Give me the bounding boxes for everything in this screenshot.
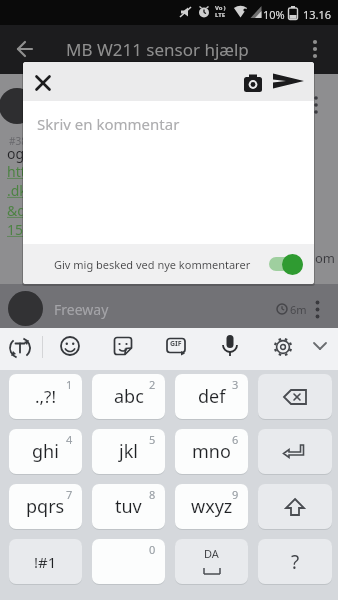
button[interactable] bbox=[15, 39, 35, 59]
button[interactable] bbox=[258, 484, 332, 529]
staticText: wxyz bbox=[191, 494, 233, 519]
button[interactable] bbox=[59, 335, 81, 357]
staticText: 4 bbox=[66, 432, 73, 447]
staticText: 2 bbox=[149, 377, 156, 392]
button[interactable] bbox=[308, 38, 324, 60]
staticText: 0 bbox=[149, 542, 156, 557]
button[interactable] bbox=[272, 73, 306, 91]
staticText: pqrs bbox=[26, 494, 65, 519]
button[interactable]: jkl bbox=[92, 429, 165, 474]
staticText: DA bbox=[204, 546, 219, 561]
staticText: jkl bbox=[119, 439, 138, 464]
button[interactable] bbox=[269, 252, 303, 276]
staticText: 5 bbox=[149, 432, 156, 447]
button[interactable] bbox=[221, 333, 239, 359]
staticText: og k bbox=[7, 144, 36, 163]
button[interactable] bbox=[243, 73, 265, 93]
staticText: 10% bbox=[263, 7, 285, 22]
staticText: 13.16 bbox=[303, 7, 332, 22]
staticText: tuv bbox=[115, 494, 142, 519]
staticText: 7 bbox=[66, 487, 73, 502]
staticText: Vo ) bbox=[215, 4, 226, 12]
staticText: mno bbox=[192, 439, 231, 464]
button[interactable]: mno bbox=[175, 429, 248, 474]
staticText: Freeway bbox=[54, 300, 109, 319]
button[interactable] bbox=[312, 340, 328, 352]
button[interactable]: def bbox=[175, 374, 248, 419]
button[interactable] bbox=[7, 335, 33, 361]
staticText: MB W211 sensor hjælp bbox=[66, 38, 249, 61]
staticText: 6 bbox=[232, 432, 239, 447]
staticText: om bbox=[315, 249, 336, 267]
button[interactable]: ? bbox=[258, 539, 332, 584]
button[interactable] bbox=[258, 374, 332, 419]
staticText: 6m bbox=[290, 302, 307, 317]
staticText: ? bbox=[291, 549, 300, 575]
staticText: 3 bbox=[232, 377, 239, 392]
button[interactable] bbox=[258, 429, 332, 474]
staticText: GIF bbox=[170, 339, 182, 349]
button[interactable] bbox=[272, 336, 294, 358]
staticText: Skriv en kommentar bbox=[37, 114, 180, 134]
staticText: !#1 bbox=[34, 552, 57, 572]
button[interactable]: 0 bbox=[92, 539, 165, 584]
button[interactable] bbox=[34, 74, 52, 92]
staticText: Giv mig besked ved nye kommentarer bbox=[54, 257, 251, 272]
staticText: abc bbox=[114, 384, 144, 409]
button[interactable]: !#1 bbox=[9, 539, 82, 584]
button[interactable] bbox=[165, 336, 187, 356]
staticText: .,?! bbox=[35, 385, 57, 408]
staticText: LTE bbox=[215, 11, 226, 19]
staticText: https bbox=[7, 162, 42, 181]
staticText: def bbox=[198, 384, 226, 409]
staticText: &ds bbox=[7, 201, 33, 220]
button[interactable] bbox=[112, 335, 134, 357]
staticText: .dk m bbox=[7, 181, 44, 200]
staticText: 1 bbox=[66, 377, 73, 392]
staticText: #38 bbox=[9, 134, 27, 148]
button[interactable]: .,?! bbox=[9, 374, 82, 419]
button[interactable]: tuv bbox=[92, 484, 165, 529]
button[interactable]: wxyz bbox=[175, 484, 248, 529]
button[interactable]: abc bbox=[92, 374, 165, 419]
staticText: 9 bbox=[232, 487, 239, 502]
staticText: 8 bbox=[149, 487, 156, 502]
button[interactable]: DA bbox=[175, 539, 248, 584]
staticText: ghi bbox=[32, 439, 59, 464]
button[interactable]: ghi bbox=[9, 429, 82, 474]
staticText: 150 bbox=[7, 220, 32, 239]
button[interactable]: pqrs bbox=[9, 484, 82, 529]
